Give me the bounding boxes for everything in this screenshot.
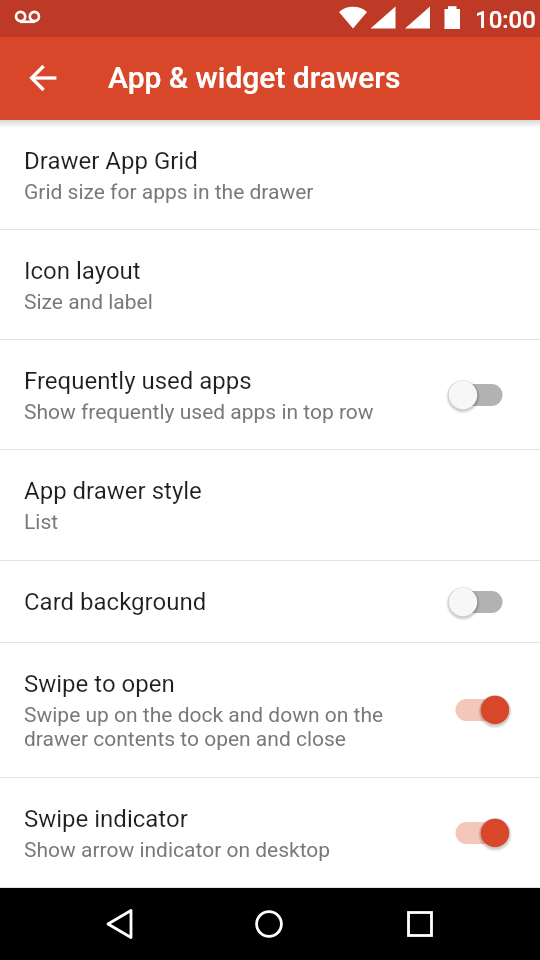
staticText: Show frequently used apps in top row	[24, 400, 374, 425]
staticText: Drawer App Grid	[24, 147, 198, 175]
button[interactable]: Swipe indicator	[0, 778, 540, 888]
button[interactable]: Frequently used apps	[0, 340, 540, 450]
staticText: Swipe to open	[24, 670, 175, 698]
button[interactable]: Switch off	[444, 578, 514, 626]
button[interactable]: Recents	[384, 888, 456, 960]
staticText: Grid size for apps in the drawer	[24, 180, 314, 205]
button[interactable]: Switch off	[444, 371, 514, 419]
button[interactable]: Back	[84, 888, 156, 960]
staticText: 10:00	[475, 6, 536, 34]
staticText: Icon layout	[24, 257, 141, 285]
button[interactable]: App drawer style	[0, 450, 540, 561]
button[interactable]: Swipe to open	[0, 643, 540, 778]
staticText: Size and label	[24, 290, 153, 315]
button[interactable]: Drawer App Grid	[0, 120, 540, 230]
staticText: Swipe indicator	[24, 805, 188, 833]
staticText: Frequently used apps	[24, 367, 252, 395]
button[interactable]: Back	[16, 50, 72, 106]
staticText: List	[24, 510, 59, 535]
staticText: Show arrow indicator on desktop	[24, 838, 331, 863]
button[interactable]: Card background	[0, 561, 540, 643]
staticText: App drawer style	[24, 477, 202, 505]
staticText: App & widget drawers	[108, 60, 401, 95]
staticText: Swipe up on the dock and down on the dra…	[24, 703, 384, 751]
button[interactable]: Icon layout	[0, 230, 540, 340]
button[interactable]: Home	[233, 888, 305, 960]
button[interactable]: Switch on	[444, 686, 514, 734]
button[interactable]: Switch on	[444, 809, 514, 857]
staticText: Card background	[24, 588, 207, 616]
